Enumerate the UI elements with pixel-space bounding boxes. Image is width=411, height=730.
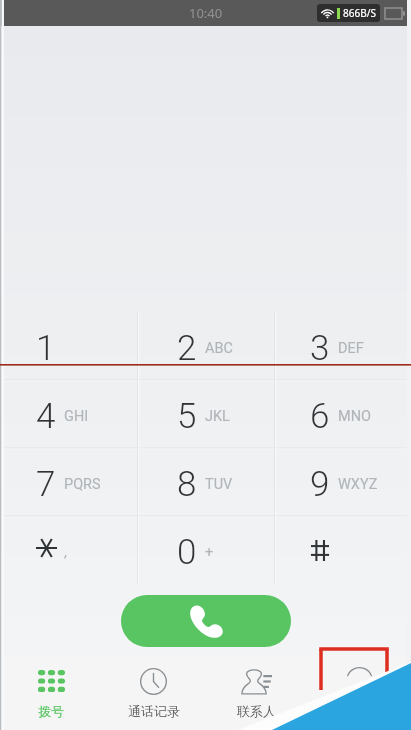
button[interactable]: 联系人 [205, 655, 308, 730]
staticText: 4 [36, 396, 56, 437]
staticText: 联系人 [237, 703, 276, 719]
staticText: 6 [310, 396, 330, 437]
button[interactable] [274, 516, 411, 584]
button[interactable]: , [0, 516, 137, 584]
button[interactable]: 0 [137, 516, 274, 584]
button[interactable]: 3 [274, 312, 411, 380]
button[interactable]: 7 [0, 448, 137, 516]
staticText: 2 [177, 328, 197, 369]
staticText: DEF [338, 340, 364, 357]
staticText: ABC [205, 340, 233, 357]
staticText: 5 [177, 396, 197, 437]
button[interactable]: Call [121, 595, 291, 647]
staticText: 8 [177, 464, 197, 505]
staticText: 通话记录 [128, 703, 180, 719]
staticText: 拨号 [38, 703, 64, 719]
staticText: 0 [177, 532, 197, 573]
staticText: 7 [36, 464, 56, 505]
staticText: 866B/S [343, 6, 376, 20]
button[interactable]: More [308, 655, 411, 730]
staticText: TUV [205, 476, 233, 493]
staticText: + [205, 544, 214, 561]
button[interactable]: 1 [0, 312, 137, 380]
staticText: 9 [310, 464, 330, 505]
button[interactable]: 拨号 [0, 655, 102, 730]
button[interactable]: 通话记录 [102, 655, 205, 730]
button[interactable]: 2 [137, 312, 274, 380]
staticText: 10:40 [189, 4, 223, 22]
staticText: , [64, 544, 67, 561]
button[interactable]: 5 [137, 380, 274, 448]
staticText: 3 [310, 328, 330, 369]
staticText: JKL [205, 408, 230, 425]
staticText: 1 [36, 328, 56, 369]
button[interactable]: 6 [274, 380, 411, 448]
staticText: GHI [64, 408, 89, 425]
staticText: WXYZ [338, 476, 378, 493]
button[interactable]: 4 [0, 380, 137, 448]
staticText: MNO [338, 408, 371, 425]
button[interactable]: 8 [137, 448, 274, 516]
staticText: PQRS [64, 476, 101, 493]
button[interactable]: 9 [274, 448, 411, 516]
